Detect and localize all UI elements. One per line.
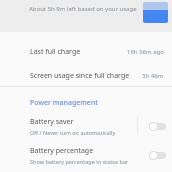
staticText: Show battery percentage in status bar <box>30 158 129 165</box>
staticText: Power management <box>30 98 98 108</box>
staticText: Screen usage since full charge <box>30 71 130 81</box>
staticText: Battery percentage <box>30 146 94 156</box>
staticText: 3h 46m <box>142 72 164 80</box>
button[interactable]: Last full charge <box>0 44 172 60</box>
button[interactable]: Power management <box>0 94 172 112</box>
other: Battery level <box>143 2 168 23</box>
staticText: Battery saver <box>30 117 74 127</box>
button[interactable]: Toggle Battery percentage <box>142 143 172 167</box>
staticText: Off / Never turn on automatically <box>30 129 116 136</box>
staticText: 16h 56m ago <box>127 48 164 56</box>
staticText: About 5h 9m left based on your usage <box>29 5 137 13</box>
staticText: Last full charge <box>30 47 81 57</box>
button[interactable]: Battery saver <box>0 114 172 138</box>
button[interactable]: Screen usage since full charge <box>0 68 172 84</box>
button[interactable]: Battery percentage <box>0 143 172 167</box>
button[interactable]: Toggle Battery saver <box>142 114 172 138</box>
